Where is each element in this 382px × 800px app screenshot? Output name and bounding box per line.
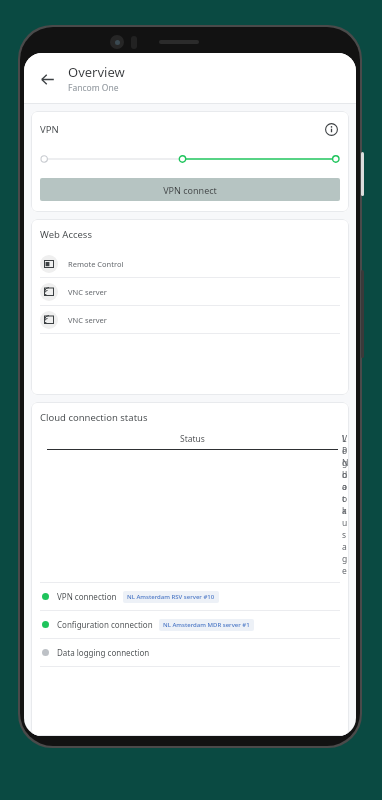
staticText: Status [180,433,205,445]
button[interactable]: Information [322,120,340,138]
button[interactable]: Configuration connection [40,611,340,638]
staticText: VPN connection [57,591,117,602]
button[interactable]: Remote Control [40,250,340,277]
staticText: Configuration connection [57,619,153,630]
button[interactable]: VNC server [40,306,340,333]
staticText: Overview [68,63,125,81]
button[interactable]: Back [34,66,60,92]
staticText: Web Access [40,228,92,241]
staticText: Remote Control [68,259,124,269]
staticText: NL Amsterdam RSV server #10 [127,593,215,601]
button[interactable]: Status [45,433,340,450]
staticText: NL Amsterdam MDR server #1 [163,621,250,629]
staticText: VPN [40,123,59,136]
button[interactable]: Data logging connection [40,639,340,666]
staticText: VNC server [68,315,107,325]
staticText: VPN connect [163,184,217,196]
staticText: Cloud connection status [40,411,148,424]
button[interactable]: VNC server [40,278,340,305]
button[interactable]: VPN connection [40,583,340,610]
button[interactable]: VPN connect [40,178,340,201]
staticText: Data logging connection [57,647,150,658]
staticText: Fancom One [68,82,119,94]
staticText: VNC server [68,287,107,297]
